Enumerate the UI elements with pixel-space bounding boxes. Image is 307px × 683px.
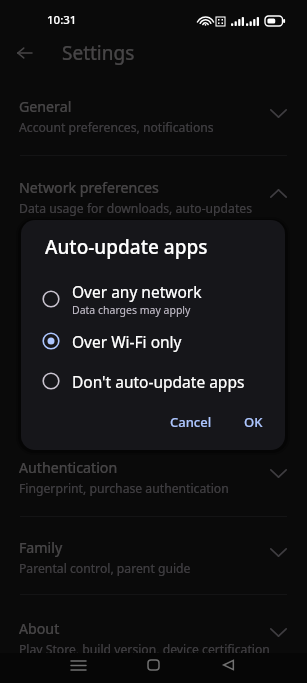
button[interactable]: Auto-download apps xyxy=(0,370,307,436)
staticText: Don't auto-update apps xyxy=(72,371,245,392)
staticText: Data usage for downloads, auto-updates xyxy=(19,200,253,217)
staticText: Over Wi-Fi only xyxy=(72,331,182,352)
button[interactable]: Auto-update apps xyxy=(0,236,307,303)
staticText: Settings xyxy=(62,40,135,66)
button[interactable]: Back xyxy=(5,34,43,72)
staticText: Family xyxy=(19,538,63,557)
button[interactable]: Back xyxy=(191,653,266,677)
staticText: Auto-download apps xyxy=(34,384,172,403)
button[interactable]: General xyxy=(0,77,307,155)
staticText: Network preferences xyxy=(19,178,159,197)
button[interactable]: About xyxy=(0,595,307,675)
button[interactable]: Auto-play videos xyxy=(0,303,307,370)
staticText: Data charges may apply xyxy=(72,303,191,317)
button[interactable]: Authentication xyxy=(0,436,307,516)
button[interactable]: Over Wi-Fi only xyxy=(21,321,285,361)
staticText: Over Wi-Fi only xyxy=(34,339,121,356)
button[interactable]: Over any network xyxy=(21,273,285,321)
staticText: Over Wi-Fi only xyxy=(34,272,121,289)
button[interactable]: Network preferences xyxy=(0,156,307,236)
staticText: Play Store, build version, device certif… xyxy=(19,641,270,658)
staticText: Parental control, parent guide xyxy=(19,560,191,577)
staticText: Fingerprint, purchase authentication xyxy=(19,480,229,497)
button[interactable]: Home xyxy=(116,653,191,677)
staticText: About xyxy=(19,619,60,638)
button[interactable]: Family xyxy=(0,517,307,594)
staticText: Auto-update apps xyxy=(34,250,154,269)
staticText: Account preferences, notifications xyxy=(19,119,214,136)
staticText: Auto-play videos xyxy=(34,317,145,336)
staticText: General xyxy=(19,97,72,116)
button[interactable]: Cancel xyxy=(162,408,220,436)
staticText: Authentication xyxy=(19,458,118,477)
staticText: Auto-update apps xyxy=(45,234,208,260)
staticText: Over any network xyxy=(72,281,202,302)
staticText: Cancel xyxy=(170,413,212,431)
button[interactable]: Recents xyxy=(41,653,116,677)
button[interactable]: Don't auto-update apps xyxy=(21,361,285,401)
button[interactable]: OK xyxy=(236,408,271,436)
staticText: 10:31 xyxy=(47,12,77,28)
staticText: OK xyxy=(244,413,263,431)
